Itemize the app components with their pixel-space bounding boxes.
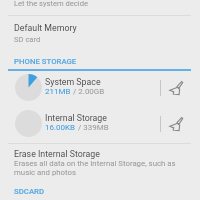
staticText: System Space: [45, 77, 101, 87]
staticText: SD card: [14, 35, 41, 44]
staticText: Erases all data on the Internal Storage,…: [14, 159, 188, 177]
staticText: / 2.00GB: [71, 87, 105, 96]
button[interactable]: Let the system decide: [0, 0, 200, 15]
button[interactable]: Clean storage: [161, 72, 190, 104]
staticText: Internal Storage: [45, 113, 107, 123]
staticText: SDCARD: [14, 187, 45, 196]
button[interactable]: Default Memory: [0, 16, 200, 44]
staticText: Erase Internal Storage: [14, 149, 100, 159]
button[interactable]: System Space: [0, 71, 200, 104]
button[interactable]: Erase Internal Storage: [0, 144, 200, 182]
button[interactable]: Internal Storage: [0, 107, 200, 140]
staticText: Let the system decide: [14, 0, 88, 8]
staticText: / 339MB: [76, 123, 109, 132]
staticText: Default Memory: [14, 23, 77, 33]
button[interactable]: Clean storage: [161, 108, 190, 140]
staticText: 16.00KB: [45, 123, 76, 132]
staticText: PHONE STORAGE: [14, 57, 77, 66]
staticText: 211MB: [45, 87, 71, 96]
